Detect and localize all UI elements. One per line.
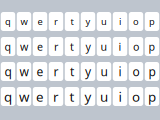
staticText: e (36, 63, 43, 80)
staticText: i (118, 63, 121, 80)
staticText: t (70, 15, 73, 28)
staticText: u (100, 39, 107, 54)
staticText: w (19, 63, 28, 80)
staticText: u (100, 87, 108, 106)
staticText: y (85, 15, 90, 28)
staticText: o (132, 87, 140, 106)
staticText: t (70, 63, 74, 80)
staticText: r (54, 15, 58, 28)
staticText: t (69, 87, 74, 106)
staticText: r (54, 39, 58, 54)
staticText: u (101, 15, 107, 28)
staticText: w (19, 87, 29, 106)
staticText: i (118, 39, 121, 54)
staticText: q (4, 39, 11, 54)
staticText: e (37, 15, 42, 28)
staticText: w (20, 15, 27, 28)
staticText: t (70, 39, 74, 54)
staticText: y (85, 63, 91, 80)
staticText: o (133, 39, 139, 54)
staticText: p (148, 63, 155, 80)
staticText: e (37, 39, 43, 54)
staticText: u (100, 63, 107, 80)
staticText: y (84, 87, 91, 106)
staticText: q (5, 15, 11, 28)
staticText: p (149, 15, 155, 28)
staticText: r (53, 87, 59, 106)
staticText: p (148, 39, 155, 54)
staticText: e (36, 87, 44, 106)
staticText: w (20, 39, 28, 54)
staticText: p (148, 87, 156, 106)
staticText: i (119, 15, 121, 28)
staticText: r (53, 63, 58, 80)
staticText: i (118, 87, 121, 106)
staticText: o (133, 15, 139, 28)
staticText: o (132, 63, 139, 80)
staticText: q (4, 87, 12, 106)
staticText: y (85, 39, 90, 54)
staticText: q (4, 63, 11, 80)
